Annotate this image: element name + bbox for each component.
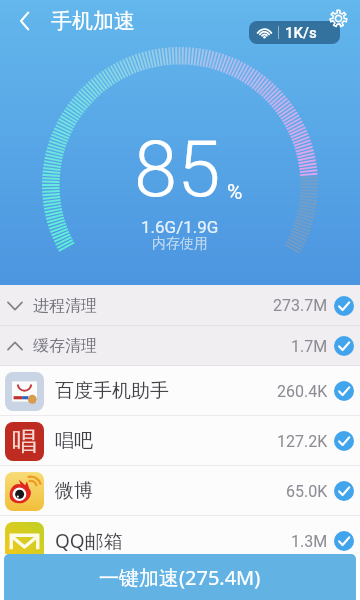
button[interactable]: QQ邮箱 (0, 516, 360, 566)
staticText: QQ邮箱 (55, 528, 123, 554)
button[interactable]: 一键加速(275.4M) (4, 554, 356, 600)
staticText: 缓存清理 (33, 336, 97, 356)
staticText: 一键加速(275.4M) (99, 564, 261, 591)
button[interactable]: Back (8, 4, 42, 38)
staticText: % (227, 180, 243, 205)
staticText: 微博 (55, 479, 93, 503)
staticText: 进程清理 (33, 296, 97, 316)
button[interactable]: Settings (324, 4, 352, 32)
staticText: 1.7M (291, 337, 328, 356)
button[interactable]: 微博 (0, 466, 360, 516)
button[interactable]: 1K/s (249, 21, 340, 44)
staticText: 1.3M (291, 532, 328, 551)
staticText: 唱吧 (55, 429, 93, 453)
staticText: 127.2K (277, 432, 328, 451)
button[interactable]: 缓存清理 (0, 326, 360, 366)
staticText: 1K/s (285, 24, 317, 42)
button[interactable]: 百度手机助手 (0, 366, 360, 416)
staticText: 唱 (12, 426, 37, 457)
staticText: 273.7M (273, 296, 328, 315)
staticText: 260.4K (277, 382, 328, 401)
staticText: 百度手机助手 (55, 379, 169, 403)
staticText: 手机加速 (51, 8, 135, 34)
staticText: 1.6G/1.9G (141, 217, 219, 237)
button[interactable]: 进程清理 (0, 285, 360, 326)
staticText: 65.0K (286, 482, 328, 501)
button[interactable]: 唱 (0, 416, 360, 466)
staticText: 内存使用 (152, 235, 208, 253)
staticText: 85 (134, 124, 221, 215)
